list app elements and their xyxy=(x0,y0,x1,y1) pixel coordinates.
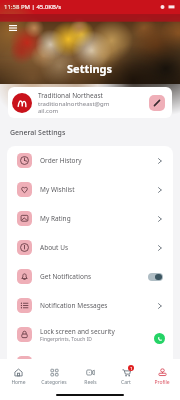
staticText: Categories xyxy=(41,379,67,386)
staticText: 11:58 PM | 45.0KB/s xyxy=(4,3,62,11)
staticText: General Settings xyxy=(10,128,66,138)
staticText: Order History xyxy=(40,156,82,165)
button[interactable]: Home xyxy=(0,362,36,389)
staticText: My Wishlist xyxy=(40,185,75,194)
staticText: Fingerprints, Touch ID xyxy=(40,336,92,343)
staticText: traditionalnortheast@gmail.com xyxy=(38,100,110,115)
staticText: Settings xyxy=(67,61,113,76)
button[interactable]: Notifications toggle xyxy=(148,273,163,281)
staticText: 1 xyxy=(130,366,133,371)
staticText: My Rating xyxy=(40,214,71,223)
button[interactable]: Categories xyxy=(36,362,72,389)
button[interactable]: 1 xyxy=(108,362,144,389)
staticText: About Us xyxy=(40,243,69,252)
button[interactable]: Get Notifications xyxy=(7,262,173,291)
staticText: Get Notifications xyxy=(40,272,92,281)
staticText: Home xyxy=(11,379,26,386)
button[interactable]: Payment Methods xyxy=(7,349,173,378)
button[interactable]: My Rating xyxy=(7,204,173,233)
staticText: Lock screen and security xyxy=(40,327,115,336)
staticText: Notification Messages xyxy=(40,301,108,310)
button[interactable]: Edit profile xyxy=(149,95,165,111)
button[interactable]: About Us xyxy=(7,233,173,262)
button[interactable]: WhatsApp chat xyxy=(147,326,172,351)
button[interactable]: Order History xyxy=(7,146,173,175)
staticText: Profile xyxy=(154,379,170,386)
button[interactable]: My Wishlist xyxy=(7,175,173,204)
button[interactable]: Menu xyxy=(6,21,20,35)
button[interactable]: Profile xyxy=(144,362,180,389)
button[interactable]: Reels xyxy=(72,362,108,389)
button[interactable]: Lock screen and security xyxy=(7,320,173,349)
staticText: Traditional Northeast xyxy=(38,91,103,100)
staticText: Reels xyxy=(84,379,97,386)
button[interactable]: Notification Messages xyxy=(7,291,173,320)
staticText: Cart xyxy=(121,379,131,386)
